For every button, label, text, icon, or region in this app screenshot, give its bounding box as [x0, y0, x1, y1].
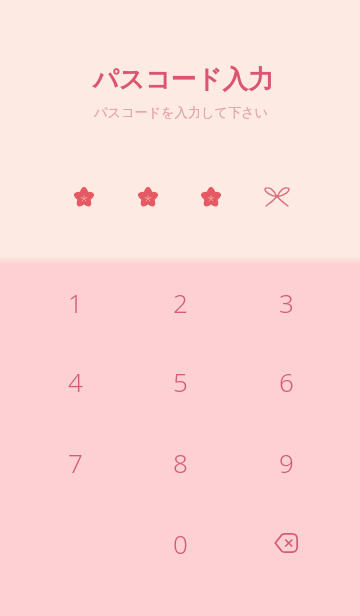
button[interactable]: 3: [240, 266, 332, 338]
staticText: 8: [173, 445, 188, 480]
staticText: 2: [173, 285, 188, 320]
staticText: 9: [279, 445, 294, 480]
staticText: パスコードを入力して下さい: [1, 104, 360, 121]
button[interactable]: 9: [240, 426, 332, 498]
staticText: 3: [279, 285, 294, 320]
button[interactable]: Delete: [240, 507, 332, 579]
button[interactable]: 6: [240, 345, 332, 417]
button[interactable]: 7: [29, 426, 121, 498]
staticText: 6: [279, 364, 294, 399]
staticText: 0: [173, 526, 188, 561]
staticText: 4: [68, 364, 83, 399]
button[interactable]: 8: [134, 426, 226, 498]
button[interactable]: 0: [134, 507, 226, 579]
button[interactable]: 5: [134, 345, 226, 417]
staticText: パスコード入力: [3, 63, 360, 95]
staticText: 5: [173, 364, 188, 399]
button[interactable]: 1: [29, 266, 121, 338]
button[interactable]: 4: [29, 345, 121, 417]
staticText: 7: [68, 445, 83, 480]
button[interactable]: 2: [134, 266, 226, 338]
staticText: 1: [68, 285, 83, 320]
